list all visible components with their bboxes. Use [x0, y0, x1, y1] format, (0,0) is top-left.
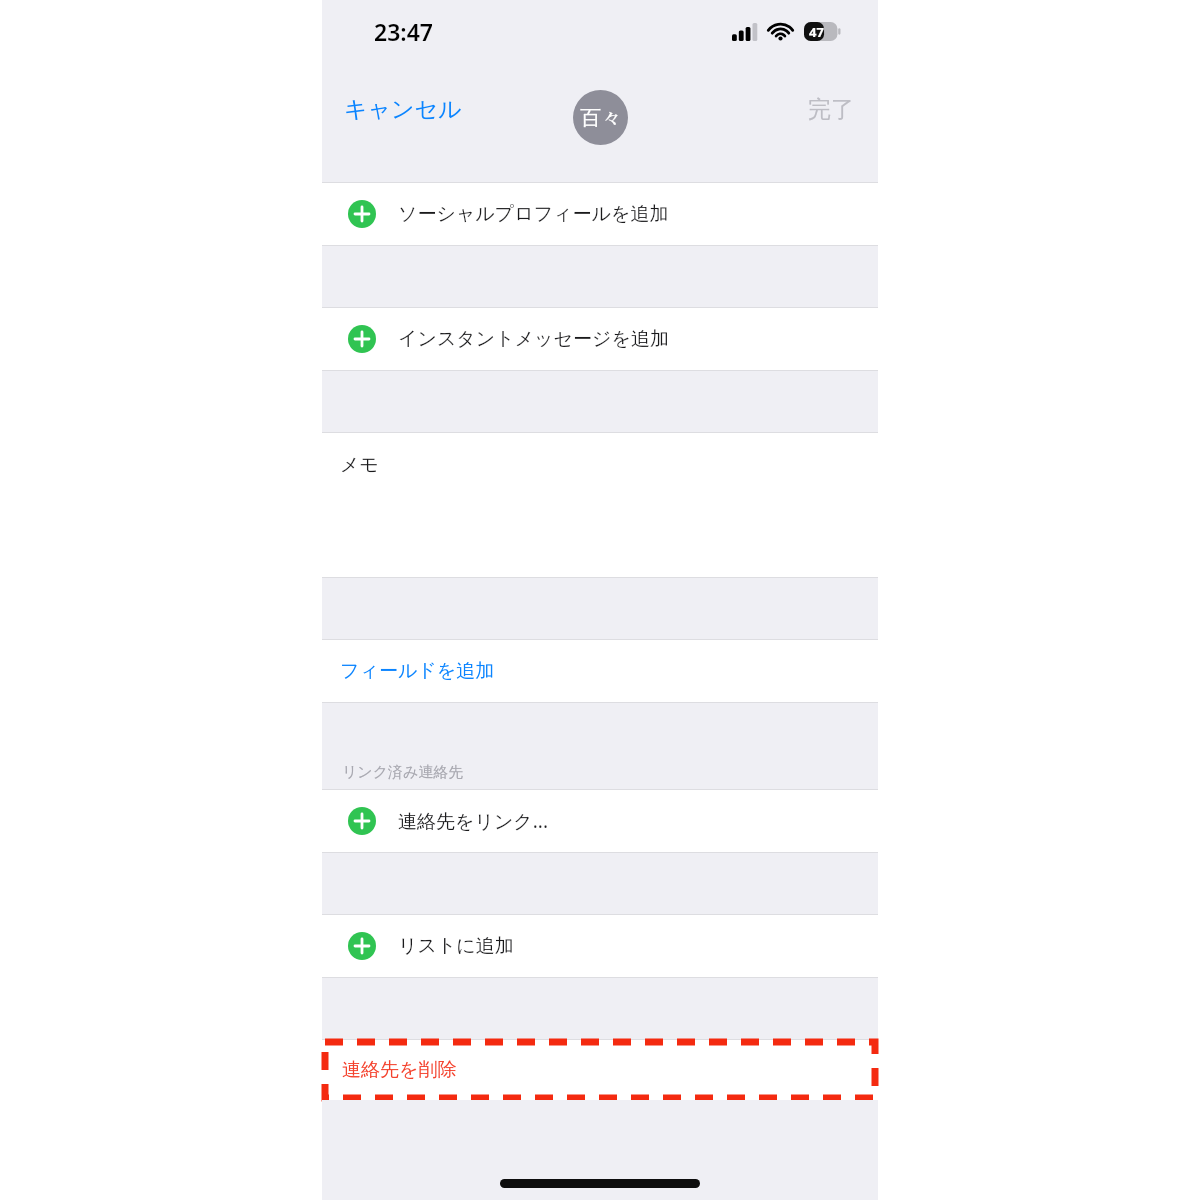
button[interactable]: リストに追加: [322, 915, 878, 977]
button[interactable]: インスタントメッセージを追加: [322, 308, 878, 370]
button[interactable]: 連絡先をリンク...: [322, 790, 878, 852]
staticText: メモ: [340, 453, 379, 477]
button[interactable]: 完了: [804, 89, 858, 130]
staticText: 連絡先を削除: [342, 1058, 457, 1082]
button[interactable]: フィールドを追加: [322, 640, 878, 702]
staticText: 23:47: [374, 16, 433, 47]
staticText: 完了: [808, 95, 854, 124]
staticText: インスタントメッセージを追加: [398, 327, 669, 351]
button[interactable]: キャンセル: [340, 89, 466, 130]
staticText: リンク済み連絡先: [342, 763, 464, 782]
staticText: ソーシャルプロフィールを追加: [398, 202, 669, 226]
button[interactable]: メモ: [322, 433, 878, 577]
staticText: 連絡先をリンク...: [398, 808, 549, 834]
button[interactable]: ソーシャルプロフィールを追加: [322, 183, 878, 245]
staticText: リストに追加: [398, 934, 514, 958]
button[interactable]: Contact photo: [573, 90, 628, 145]
button[interactable]: 連絡先を削除: [322, 1040, 878, 1100]
staticText: 百々: [580, 105, 622, 131]
staticText: フィールドを追加: [340, 659, 495, 683]
staticText: キャンセル: [344, 95, 462, 124]
staticText: 47: [809, 23, 824, 41]
